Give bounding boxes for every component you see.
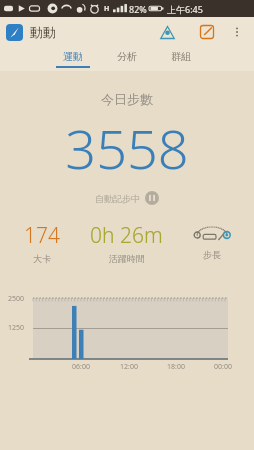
staticText: 今日步數 bbox=[0, 91, 254, 107]
button[interactable]: App icon bbox=[6, 24, 23, 41]
staticText: 0h 26m bbox=[90, 221, 163, 250]
staticText: 1250 bbox=[8, 323, 25, 333]
staticText: 06:00 bbox=[72, 362, 90, 372]
button[interactable]: 步長 bbox=[174, 221, 250, 260]
staticText: 自動記步中 bbox=[95, 193, 140, 204]
staticText: 2500 bbox=[8, 294, 25, 304]
button[interactable]: 群組 bbox=[159, 48, 203, 70]
button[interactable]: Edit bbox=[194, 19, 220, 45]
button[interactable]: 分析 bbox=[105, 48, 149, 70]
button[interactable]: 自動記步中 bbox=[0, 191, 254, 205]
staticText: 動動 bbox=[30, 24, 56, 40]
button[interactable]: 運動 bbox=[51, 48, 95, 70]
staticText: 活躍時間 bbox=[109, 253, 145, 264]
staticText: 步長 bbox=[203, 249, 221, 260]
button[interactable]: 0h 26m bbox=[79, 221, 174, 264]
staticText: 群組 bbox=[171, 50, 191, 63]
staticText: 分析 bbox=[117, 50, 137, 63]
staticText: 18:00 bbox=[167, 362, 185, 372]
staticText: 82% bbox=[129, 3, 147, 15]
staticText: H bbox=[104, 4, 110, 14]
staticText: 00:00 bbox=[214, 362, 232, 372]
staticText: 運動 bbox=[63, 50, 83, 63]
button[interactable]: More options bbox=[226, 21, 248, 43]
staticText: 174 bbox=[24, 221, 60, 250]
staticText: 3558 bbox=[0, 111, 254, 185]
button[interactable]: Map bbox=[154, 19, 180, 45]
staticText: 大卡 bbox=[33, 253, 51, 264]
staticText: 12:00 bbox=[120, 362, 138, 372]
staticText: 上午6:45 bbox=[167, 3, 203, 15]
button[interactable]: 174 bbox=[4, 221, 79, 264]
